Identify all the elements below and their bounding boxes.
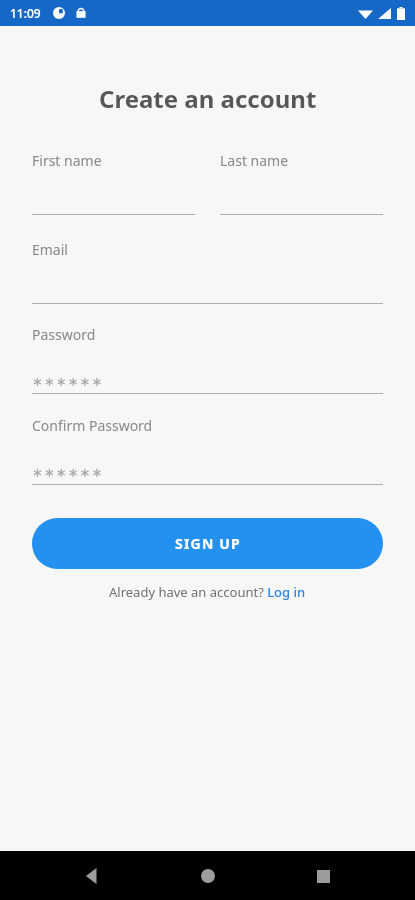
- button[interactable]: Confirm Password: [32, 416, 383, 485]
- button[interactable]: Back: [68, 852, 116, 900]
- button[interactable]: Already have an account? Log in: [109, 583, 306, 601]
- button[interactable]: Home: [184, 852, 232, 900]
- button[interactable]: Email: [32, 240, 383, 304]
- staticText: 11:09: [10, 5, 41, 21]
- staticText: Create an account: [99, 82, 317, 115]
- button[interactable]: Password: [32, 325, 383, 394]
- button[interactable]: SIGN UP: [32, 518, 383, 569]
- button[interactable]: Recent apps: [299, 852, 347, 900]
- staticText: Confirm Password: [32, 416, 153, 435]
- staticText: Password: [32, 325, 96, 344]
- staticText: SIGN UP: [175, 534, 241, 553]
- staticText: ∗∗∗∗∗∗: [32, 465, 104, 480]
- staticText: Last name: [220, 151, 289, 170]
- staticText: First name: [32, 151, 102, 170]
- staticText: Email: [32, 240, 68, 259]
- staticText: Already have an account? Log in: [109, 583, 306, 601]
- staticText: ∗∗∗∗∗∗: [32, 374, 104, 389]
- button[interactable]: Last name: [220, 151, 383, 215]
- button[interactable]: First name: [32, 151, 195, 215]
